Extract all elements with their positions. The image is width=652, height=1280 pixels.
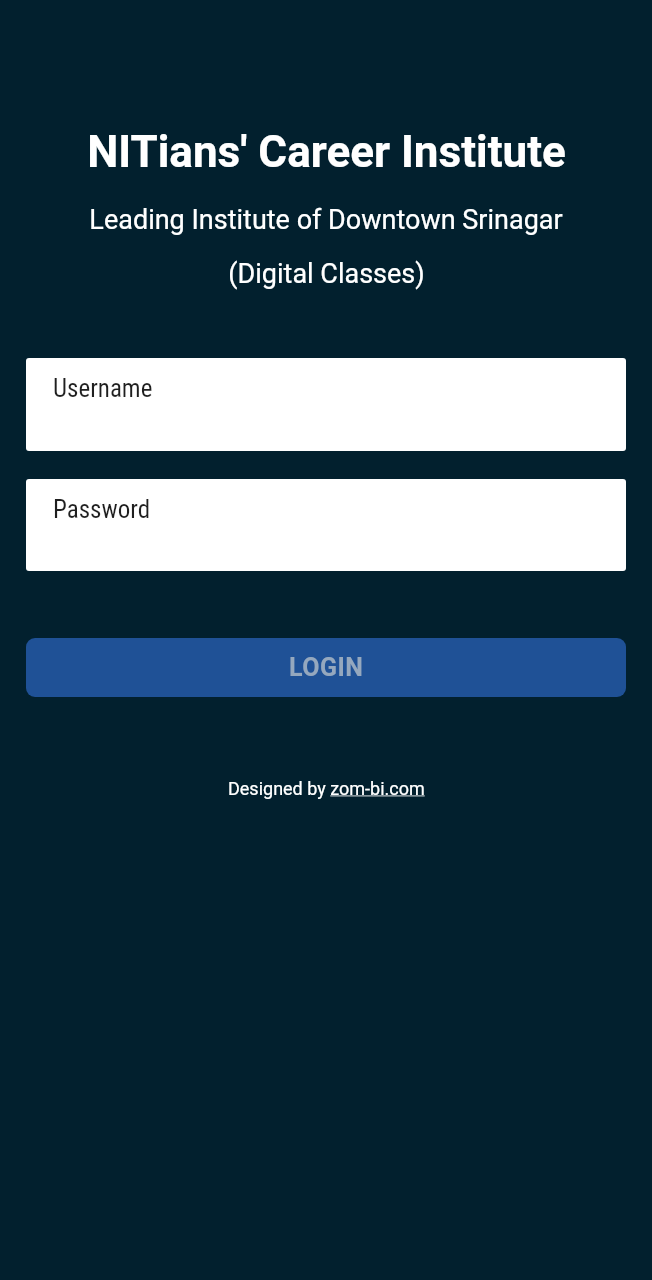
button[interactable]: Designed by zom-bi.com xyxy=(0,760,652,817)
button[interactable]: LOGIN xyxy=(26,638,626,697)
staticText: Username xyxy=(53,374,153,403)
staticText: Designed by zom-bi.com xyxy=(228,778,425,799)
button[interactable]: Username xyxy=(26,358,626,451)
staticText: LOGIN xyxy=(289,653,364,682)
staticText: Leading Institute of Downtown Srinagar xyxy=(89,204,563,236)
button[interactable]: Password xyxy=(26,479,626,571)
staticText: (Digital Classes) xyxy=(228,258,425,290)
staticText: NITians' Career Institute xyxy=(87,126,566,178)
staticText: Password xyxy=(53,495,151,524)
